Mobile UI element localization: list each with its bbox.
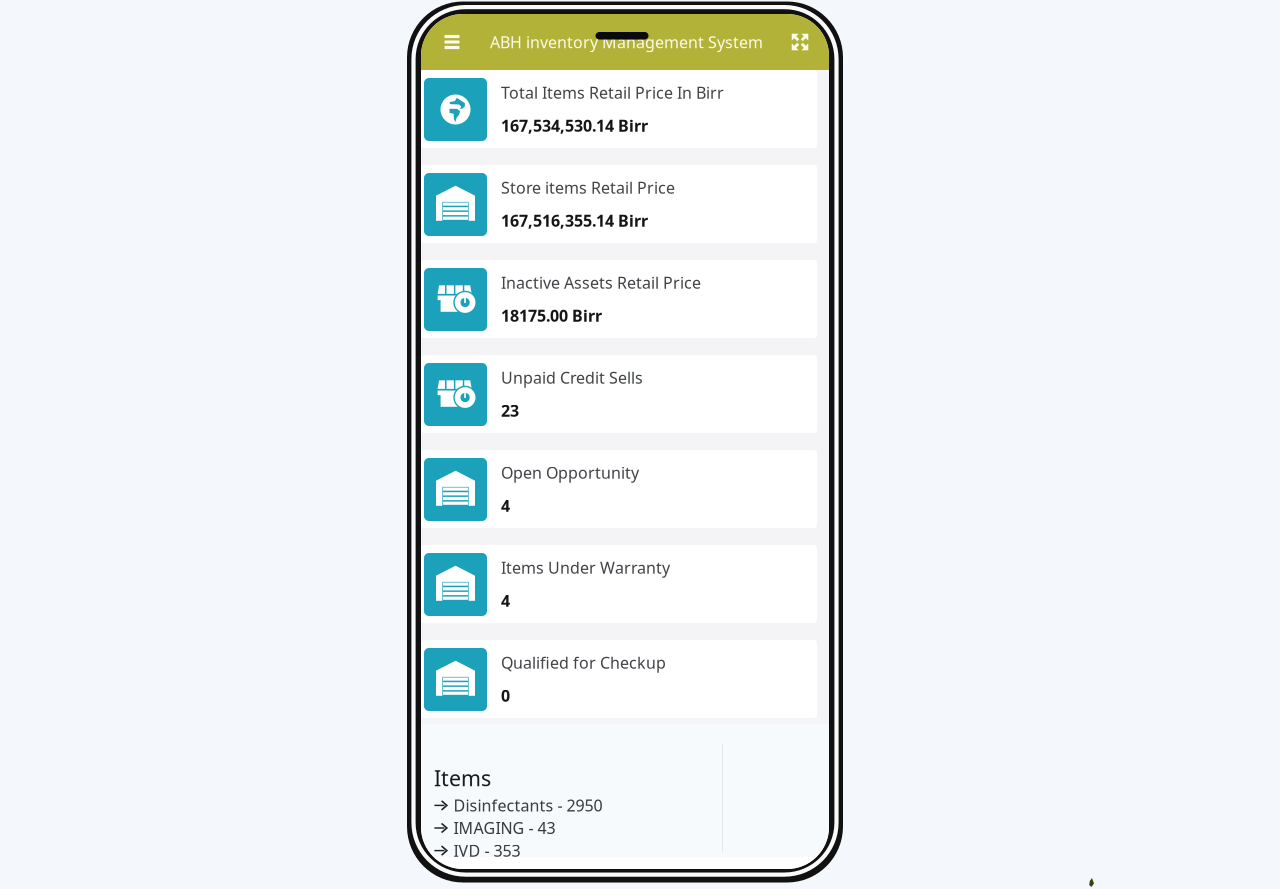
staticText: 18175.00 Birr [501, 305, 602, 326]
button[interactable]: Store items Retail Price [421, 165, 829, 243]
button[interactable]: IVD - 353 [434, 839, 722, 862]
button[interactable]: Unpaid Credit Sells [421, 355, 829, 433]
staticText: IVD - 353 [453, 840, 520, 861]
staticText: Unpaid Credit Sells [501, 367, 643, 388]
staticText: Items [434, 764, 491, 792]
staticText: 4 [501, 495, 510, 516]
button[interactable]: IMAGING - 43 [434, 817, 722, 839]
staticText: IMAGING - 43 [453, 817, 555, 838]
button[interactable]: Inactive Assets Retail Price [421, 260, 829, 338]
staticText: Items Under Warranty [501, 557, 670, 578]
button[interactable]: Menu [421, 14, 469, 70]
button[interactable]: Qualified for Checkup [421, 640, 829, 718]
button[interactable]: Open Opportunity [421, 450, 829, 528]
button[interactable]: Full screen [778, 14, 822, 70]
staticText: 167,516,355.14 Birr [501, 210, 648, 231]
staticText: ABH inventory Management System [490, 31, 763, 53]
staticText: 0 [501, 685, 510, 706]
staticText: Qualified for Checkup [501, 652, 666, 673]
staticText: Store items Retail Price [501, 177, 675, 198]
button[interactable]: Items Under Warranty [421, 545, 829, 623]
staticText: Disinfectants - 2950 [453, 795, 602, 816]
button[interactable]: Total Items Retail Price In Birr [421, 70, 829, 148]
staticText: 167,534,530.14 Birr [501, 115, 648, 136]
staticText: 23 [501, 400, 519, 421]
staticText: Open Opportunity [501, 462, 639, 483]
staticText: Inactive Assets Retail Price [501, 272, 701, 293]
staticText: Total Items Retail Price In Birr [501, 82, 724, 103]
button[interactable]: Disinfectants - 2950 [434, 794, 722, 817]
staticText: 4 [501, 590, 510, 611]
